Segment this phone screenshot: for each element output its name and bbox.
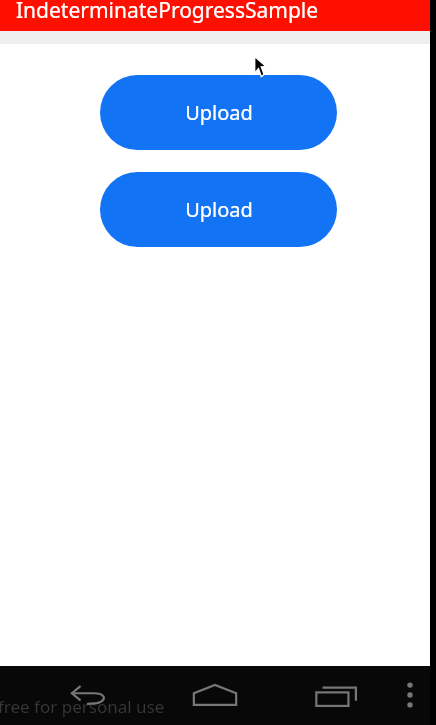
staticText: free for personal use (0, 695, 165, 718)
button[interactable]: Back (63, 674, 115, 716)
button[interactable]: More options (392, 674, 428, 716)
button[interactable]: Home (189, 674, 241, 716)
staticText: IndeterminateProgressSample (16, 0, 319, 25)
button[interactable]: Recent apps (311, 674, 363, 716)
button[interactable]: Upload (100, 172, 337, 247)
staticText: Upload (185, 196, 253, 223)
staticText: Upload (185, 99, 253, 126)
button[interactable]: Upload (100, 75, 337, 150)
